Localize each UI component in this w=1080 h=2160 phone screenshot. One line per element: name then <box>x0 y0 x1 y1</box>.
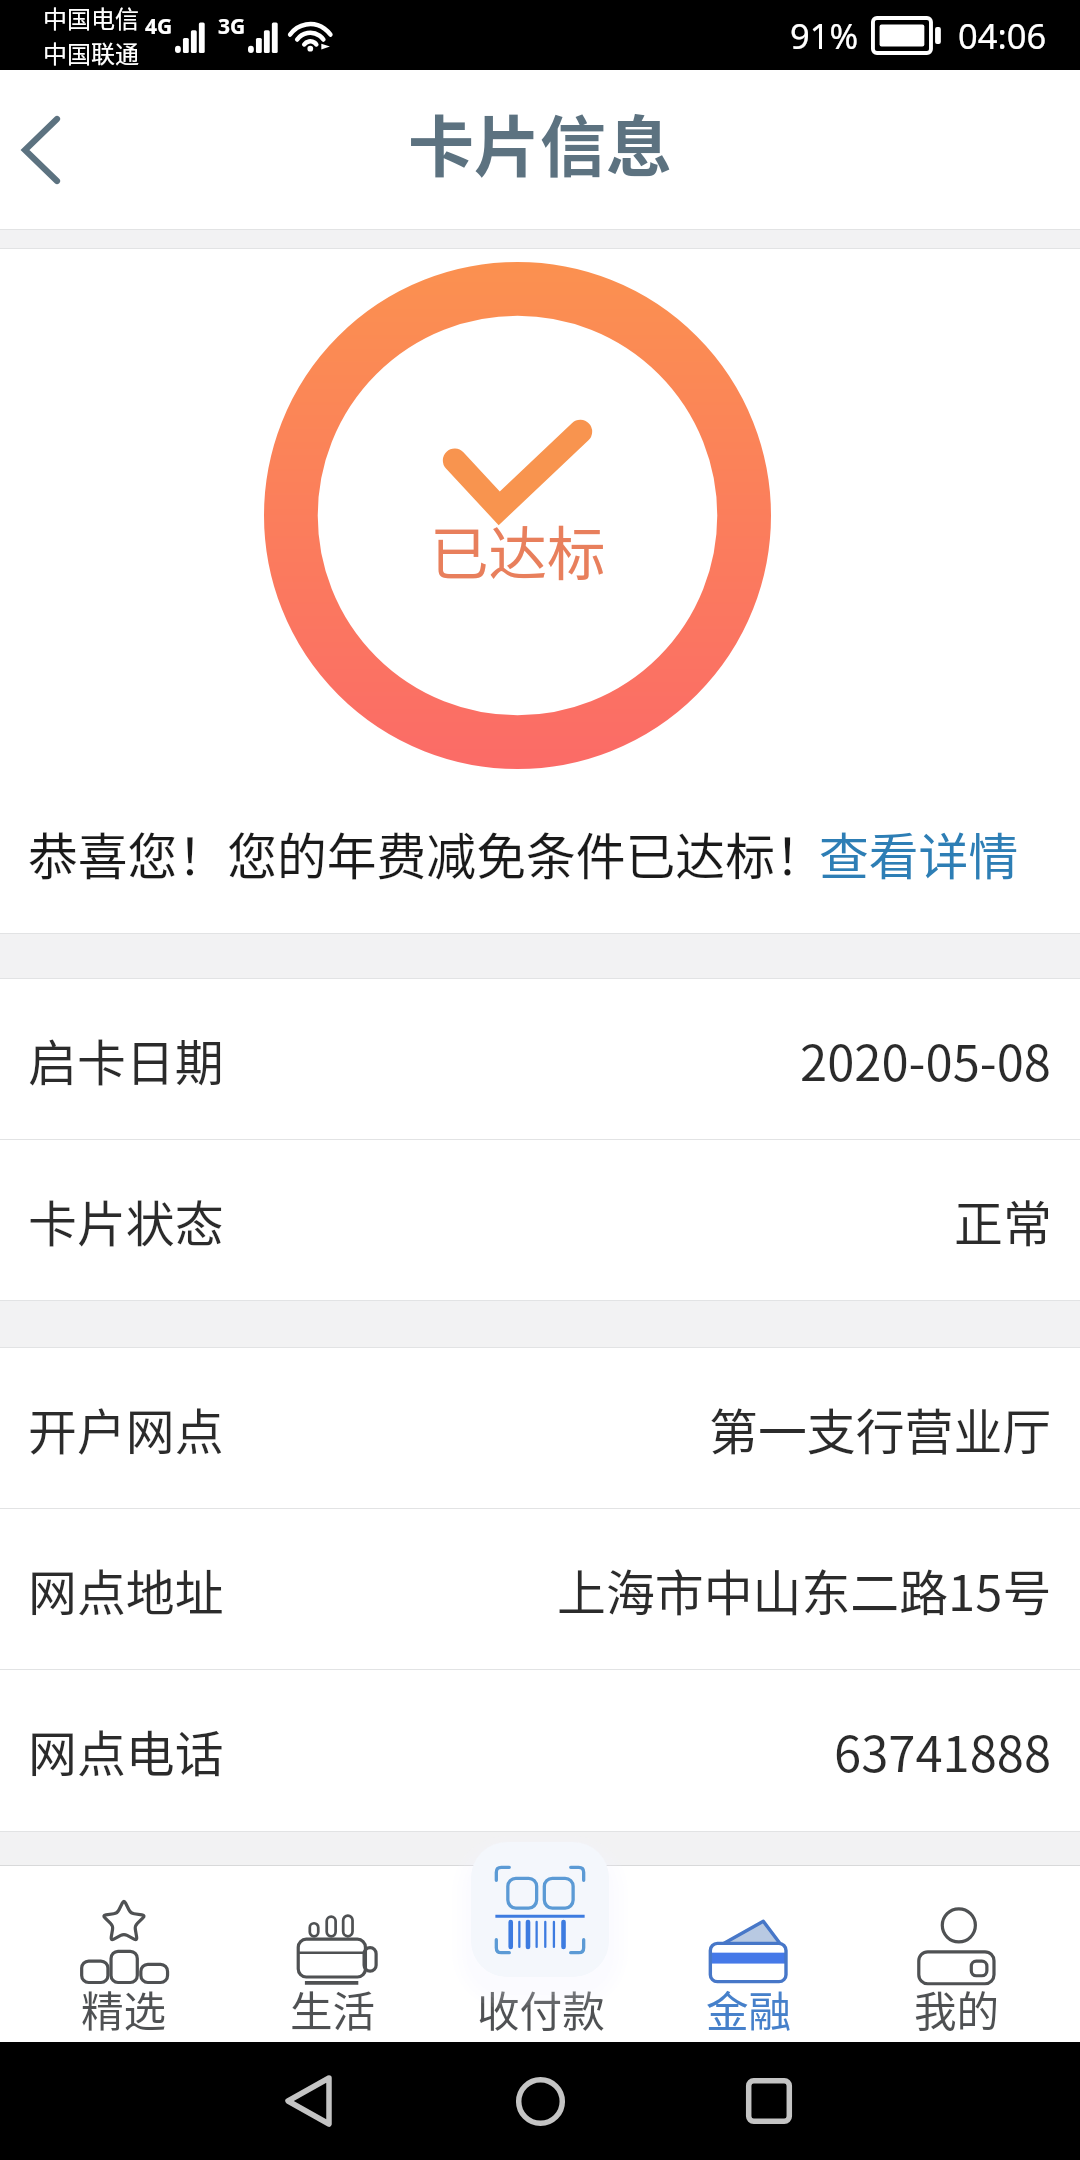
staticText: 已达标 <box>430 507 606 592</box>
button[interactable]: 金融 <box>645 1866 853 2042</box>
staticText: 精选 <box>81 1978 167 2040</box>
staticText: 启卡日期 <box>28 1024 224 1095</box>
staticText: 91% <box>790 12 859 59</box>
staticText: 网点地址 <box>28 1554 224 1625</box>
button[interactable]: Recents <box>709 2042 829 2160</box>
staticText: 中国联通 <box>43 35 139 70</box>
staticText: 开户网点 <box>28 1393 224 1464</box>
button[interactable]: 生活 <box>228 1866 437 2042</box>
staticText: 卡片信息 <box>408 94 672 190</box>
button[interactable]: 收付款 <box>471 1842 609 1977</box>
staticText: 生活 <box>290 1978 376 2040</box>
staticText: 63741888 <box>834 1715 1052 1786</box>
staticText: 正常 <box>954 1185 1052 1256</box>
staticText: 第一支行营业厅 <box>709 1393 1052 1464</box>
staticText: 4G <box>145 12 173 41</box>
button[interactable]: 网点电话 <box>0 1670 1080 1830</box>
staticText: 查看详情 <box>819 817 1019 889</box>
button[interactable]: 启卡日期 <box>0 979 1080 1139</box>
staticText: 我的 <box>914 1978 1000 2040</box>
button[interactable]: 开户网点 <box>0 1348 1080 1508</box>
staticText: 中国电信 <box>43 0 139 35</box>
button[interactable]: 网点地址 <box>0 1509 1080 1669</box>
button[interactable]: Back <box>248 2042 368 2160</box>
staticText: 收付款 <box>477 1978 605 2040</box>
staticText: 金融 <box>706 1978 792 2040</box>
button[interactable]: Back <box>0 70 81 229</box>
staticText: 恭喜您！您的年费减免条件已达标！ <box>28 817 825 889</box>
staticText: 04:06 <box>958 12 1047 59</box>
button[interactable]: 我的 <box>853 1866 1061 2042</box>
staticText: 2020-05-08 <box>800 1024 1052 1095</box>
button[interactable]: Home <box>480 2042 600 2160</box>
button[interactable]: 收付款 <box>437 1866 645 2042</box>
staticText: 3G <box>218 12 246 41</box>
button[interactable]: 查看详情 <box>819 811 1019 895</box>
button[interactable]: 卡片状态 <box>0 1140 1080 1300</box>
staticText: 网点电话 <box>28 1715 224 1786</box>
staticText: 卡片状态 <box>28 1185 224 1256</box>
button[interactable]: 精选 <box>19 1866 228 2042</box>
staticText: 上海市中山东二路15号 <box>557 1554 1052 1625</box>
